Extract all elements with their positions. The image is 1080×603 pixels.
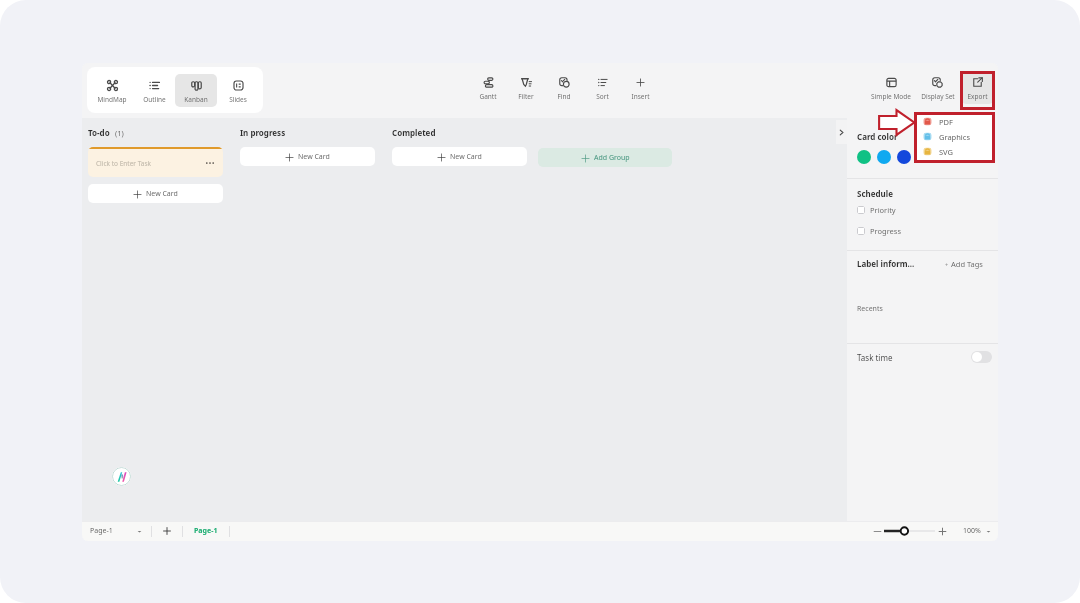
button[interactable]: Find: [545, 71, 583, 104]
button[interactable]: Page-1: [90, 526, 142, 536]
staticText: Recents: [857, 304, 883, 314]
staticText: Page-1: [90, 526, 113, 536]
staticText: Completed: [392, 127, 436, 138]
button[interactable]: New Card: [88, 184, 223, 203]
staticText: Add Group: [594, 153, 630, 163]
button[interactable]: Page-1: [194, 526, 218, 536]
button[interactable]: Slides: [217, 74, 259, 107]
staticText: SVG: [939, 147, 954, 157]
button[interactable]: Display Set: [914, 71, 961, 104]
staticText: +: [945, 261, 949, 268]
staticText: Graphics: [939, 132, 970, 142]
button[interactable]: Click to Enter Task: [88, 147, 223, 177]
button[interactable]: Progress: [857, 226, 901, 236]
button[interactable]: Kanban: [175, 74, 217, 107]
button[interactable]: Export: [961, 71, 994, 104]
staticText: Kanban: [184, 95, 208, 104]
staticText: Sort: [596, 92, 609, 101]
button[interactable]: SVG: [923, 144, 954, 159]
staticText: Add Tags: [951, 259, 983, 269]
button[interactable]: Outline: [133, 74, 175, 107]
staticText: Find: [557, 92, 571, 101]
staticText: PDF: [939, 117, 953, 127]
button[interactable]: Collapse panel: [836, 120, 847, 144]
button[interactable]: Zoom out: [873, 527, 882, 536]
staticText: Click to Enter Task: [96, 159, 152, 168]
button[interactable]: Insert: [621, 71, 659, 104]
staticText: Page-1: [194, 526, 218, 536]
button[interactable]: Priority: [857, 205, 896, 215]
staticText: Insert: [631, 92, 650, 101]
button[interactable]: Add page: [161, 525, 173, 537]
button[interactable]: Filter: [507, 71, 545, 104]
button[interactable]: PDF: [923, 114, 953, 129]
button[interactable]: 100%: [963, 526, 991, 536]
button[interactable]: Gantt: [469, 71, 507, 104]
staticText: Simple Mode: [871, 92, 911, 101]
button[interactable]: +: [945, 259, 983, 269]
staticText: Filter: [518, 92, 534, 101]
staticText: New Card: [146, 189, 178, 199]
staticText: Progress: [870, 226, 901, 236]
staticText: Priority: [870, 205, 896, 215]
staticText: (1): [115, 128, 124, 138]
staticText: Slides: [229, 95, 247, 104]
staticText: MindMap: [97, 95, 127, 104]
staticText: Outline: [143, 95, 166, 104]
staticText: To-do: [88, 127, 110, 138]
button[interactable]: Graphics: [923, 129, 970, 144]
button[interactable]: Task time toggle: [971, 351, 992, 363]
staticText: Label inform...: [857, 258, 915, 269]
staticText: Display Set: [921, 92, 955, 101]
button[interactable]: Simple Mode: [868, 71, 914, 104]
button[interactable]: Sort: [583, 71, 621, 104]
staticText: Gantt: [479, 92, 497, 101]
button[interactable]: Color: [877, 150, 891, 164]
button[interactable]: New Card: [240, 147, 375, 166]
button[interactable]: Zoom in: [938, 527, 947, 536]
staticText: New Card: [450, 152, 482, 162]
button[interactable]: Add Group: [538, 148, 672, 167]
staticText: New Card: [298, 152, 330, 162]
staticText: Schedule: [857, 188, 893, 199]
staticText: Card color: [857, 131, 898, 142]
staticText: In progress: [240, 127, 286, 138]
button[interactable]: Color: [897, 150, 911, 164]
button[interactable]: New Card: [392, 147, 527, 166]
button[interactable]: MindMap: [91, 74, 133, 107]
button[interactable]: AI assistant: [112, 467, 131, 486]
staticText: Export: [967, 92, 988, 101]
staticText: 100%: [963, 526, 981, 536]
staticText: Task time: [857, 352, 893, 363]
button[interactable]: Color: [857, 150, 871, 164]
